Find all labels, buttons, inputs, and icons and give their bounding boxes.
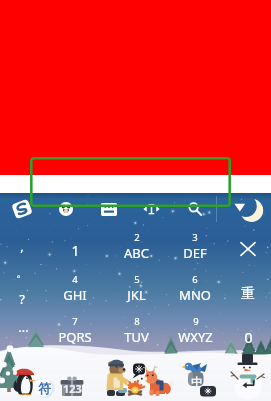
staticText: 6 — [192, 273, 198, 286]
button[interactable]: 6 — [166, 268, 224, 308]
staticText: , — [20, 237, 24, 255]
button[interactable]: 0 — [224, 323, 271, 351]
button[interactable]: Keyboard layout — [92, 194, 126, 224]
staticText: 中 — [191, 375, 202, 389]
staticText: WXYZ — [178, 328, 213, 346]
staticText: 2 — [134, 231, 140, 244]
button[interactable]: Enter — [234, 373, 262, 395]
button[interactable]: ? — [0, 286, 44, 312]
staticText: GHI — [63, 286, 87, 304]
staticText: 123 — [63, 381, 82, 394]
button[interactable]: 5 — [107, 268, 165, 308]
button[interactable]: 。 — [0, 259, 44, 285]
button[interactable]: Search — [178, 194, 212, 224]
staticText: ABC — [124, 244, 149, 262]
staticText: DEF — [183, 244, 207, 262]
button[interactable]: Move cursor — [134, 194, 168, 224]
staticText: 8 — [134, 315, 140, 328]
staticText: 5 — [134, 273, 140, 286]
button[interactable]: 1 — [51, 236, 99, 264]
staticText: … — [18, 318, 29, 336]
button[interactable]: 3 — [166, 226, 224, 266]
button[interactable]: 8 — [107, 310, 165, 350]
button[interactable]: Space — [92, 358, 180, 401]
staticText: 3 — [192, 231, 198, 244]
button[interactable]: Numbers and symbols — [62, 381, 82, 394]
button[interactable]: Emoji — [49, 194, 83, 224]
staticText: TUV — [124, 328, 149, 346]
staticText: 。 — [16, 264, 29, 280]
staticText: 0 — [244, 328, 253, 347]
button[interactable]: 2 — [107, 226, 165, 266]
button[interactable]: 9 — [166, 310, 224, 350]
staticText: 7 — [72, 315, 78, 328]
staticText: 1 — [71, 241, 80, 260]
staticText: 4 — [72, 273, 78, 286]
button[interactable]: 7 — [46, 310, 104, 350]
button[interactable]: … — [1, 314, 45, 340]
staticText: JKL — [127, 286, 146, 304]
staticText: 重 — [241, 285, 255, 303]
button[interactable]: Sogou input menu — [5, 194, 39, 224]
button[interactable]: 中 — [188, 375, 204, 389]
staticText: 9 — [193, 315, 199, 328]
staticText: ? — [19, 290, 25, 308]
button[interactable]: Night theme — [231, 194, 271, 224]
button[interactable]: , — [0, 233, 44, 259]
staticText: PQRS — [58, 328, 92, 346]
button[interactable]: 符 — [35, 380, 53, 396]
staticText: MNO — [179, 286, 211, 304]
button[interactable]: Delete — [224, 235, 271, 263]
button[interactable]: 4 — [46, 268, 104, 308]
staticText: 符 — [38, 380, 51, 396]
button[interactable]: 重 — [224, 280, 271, 308]
